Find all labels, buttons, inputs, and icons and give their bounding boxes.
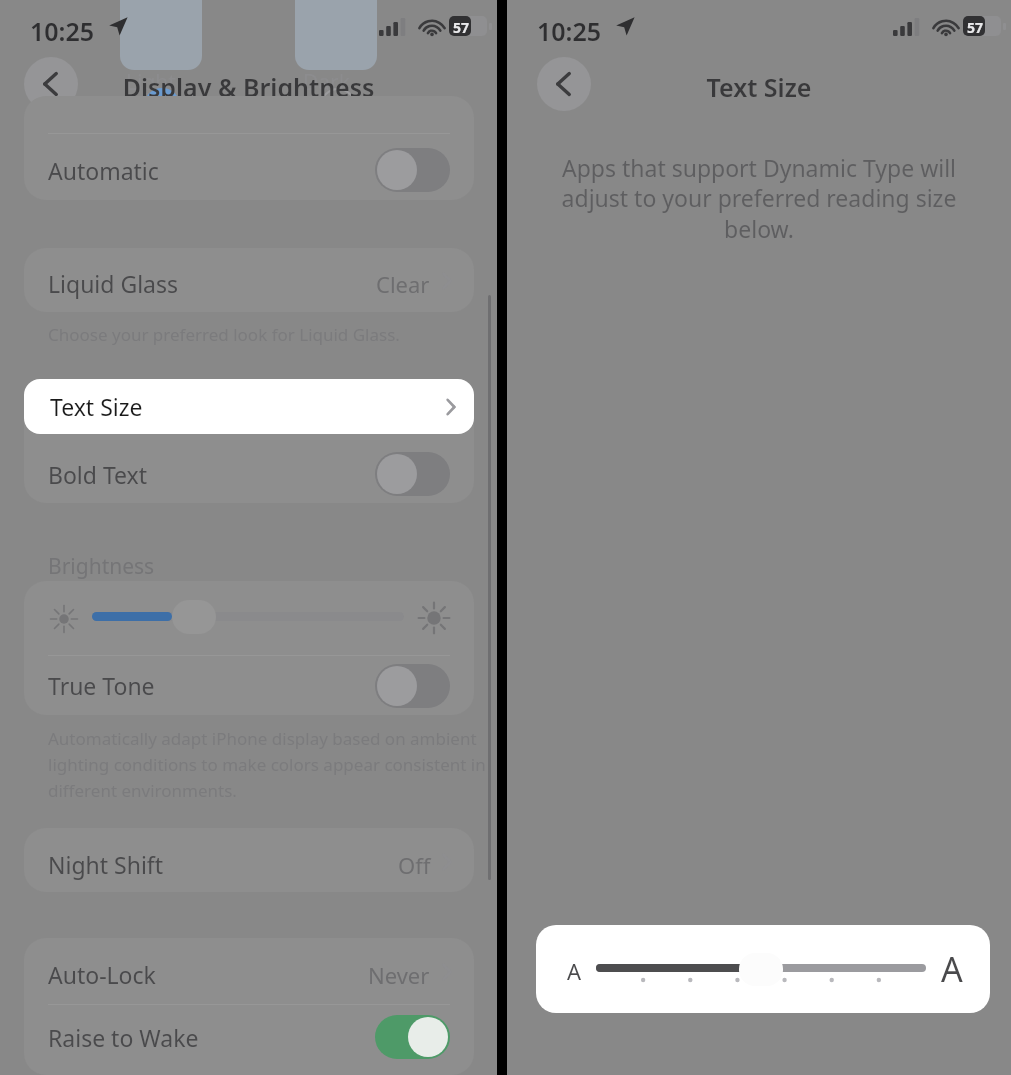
button[interactable]: Back	[24, 57, 78, 111]
button[interactable]: Text Size	[24, 379, 474, 434]
staticText: Off	[398, 850, 431, 880]
staticText: Text Size	[507, 70, 1011, 104]
button[interactable]: Raise to Wake	[24, 1006, 474, 1068]
staticText: Dark	[303, 68, 350, 97]
button[interactable]: True Tone	[24, 656, 474, 715]
button[interactable]: Off	[375, 148, 450, 192]
staticText: 57	[453, 18, 470, 37]
staticText: 10:25	[30, 14, 95, 48]
staticText: Automatic	[48, 155, 159, 186]
button[interactable]	[24, 938, 474, 1004]
staticText: Clear	[376, 269, 430, 299]
button[interactable]: Bold Text	[24, 444, 474, 504]
staticText: Auto-Lock	[48, 959, 156, 990]
button[interactable]: Text size	[739, 953, 783, 986]
staticText: Apps that support Dynamic Type will adju…	[537, 152, 981, 245]
staticText: 10:25	[537, 14, 602, 48]
button[interactable]: On	[375, 1015, 450, 1059]
staticText: Brightness	[48, 552, 155, 581]
staticText: 57	[967, 18, 984, 37]
staticText: Text Size	[50, 391, 143, 422]
staticText: Bold Text	[48, 459, 148, 490]
staticText: A	[567, 956, 582, 986]
staticText: Choose your preferred look for Liquid Gl…	[48, 323, 400, 346]
button[interactable]	[24, 248, 474, 312]
button[interactable]: Automatic	[24, 140, 474, 200]
staticText: Automatically adapt iPhone display based…	[48, 727, 486, 802]
button[interactable]: Off	[375, 664, 450, 708]
staticText: Never	[368, 960, 430, 990]
staticText: Liquid Glass	[48, 268, 179, 299]
button[interactable]: Off	[375, 452, 450, 496]
staticText: Light	[126, 68, 176, 97]
staticText: Night Shift	[48, 849, 164, 880]
staticText: Display & Brightness	[0, 70, 497, 104]
staticText: True Tone	[48, 670, 155, 701]
button[interactable]	[24, 828, 474, 892]
button[interactable]: Back	[537, 57, 591, 111]
staticText: Raise to Wake	[48, 1022, 199, 1053]
staticText: A	[941, 946, 963, 992]
